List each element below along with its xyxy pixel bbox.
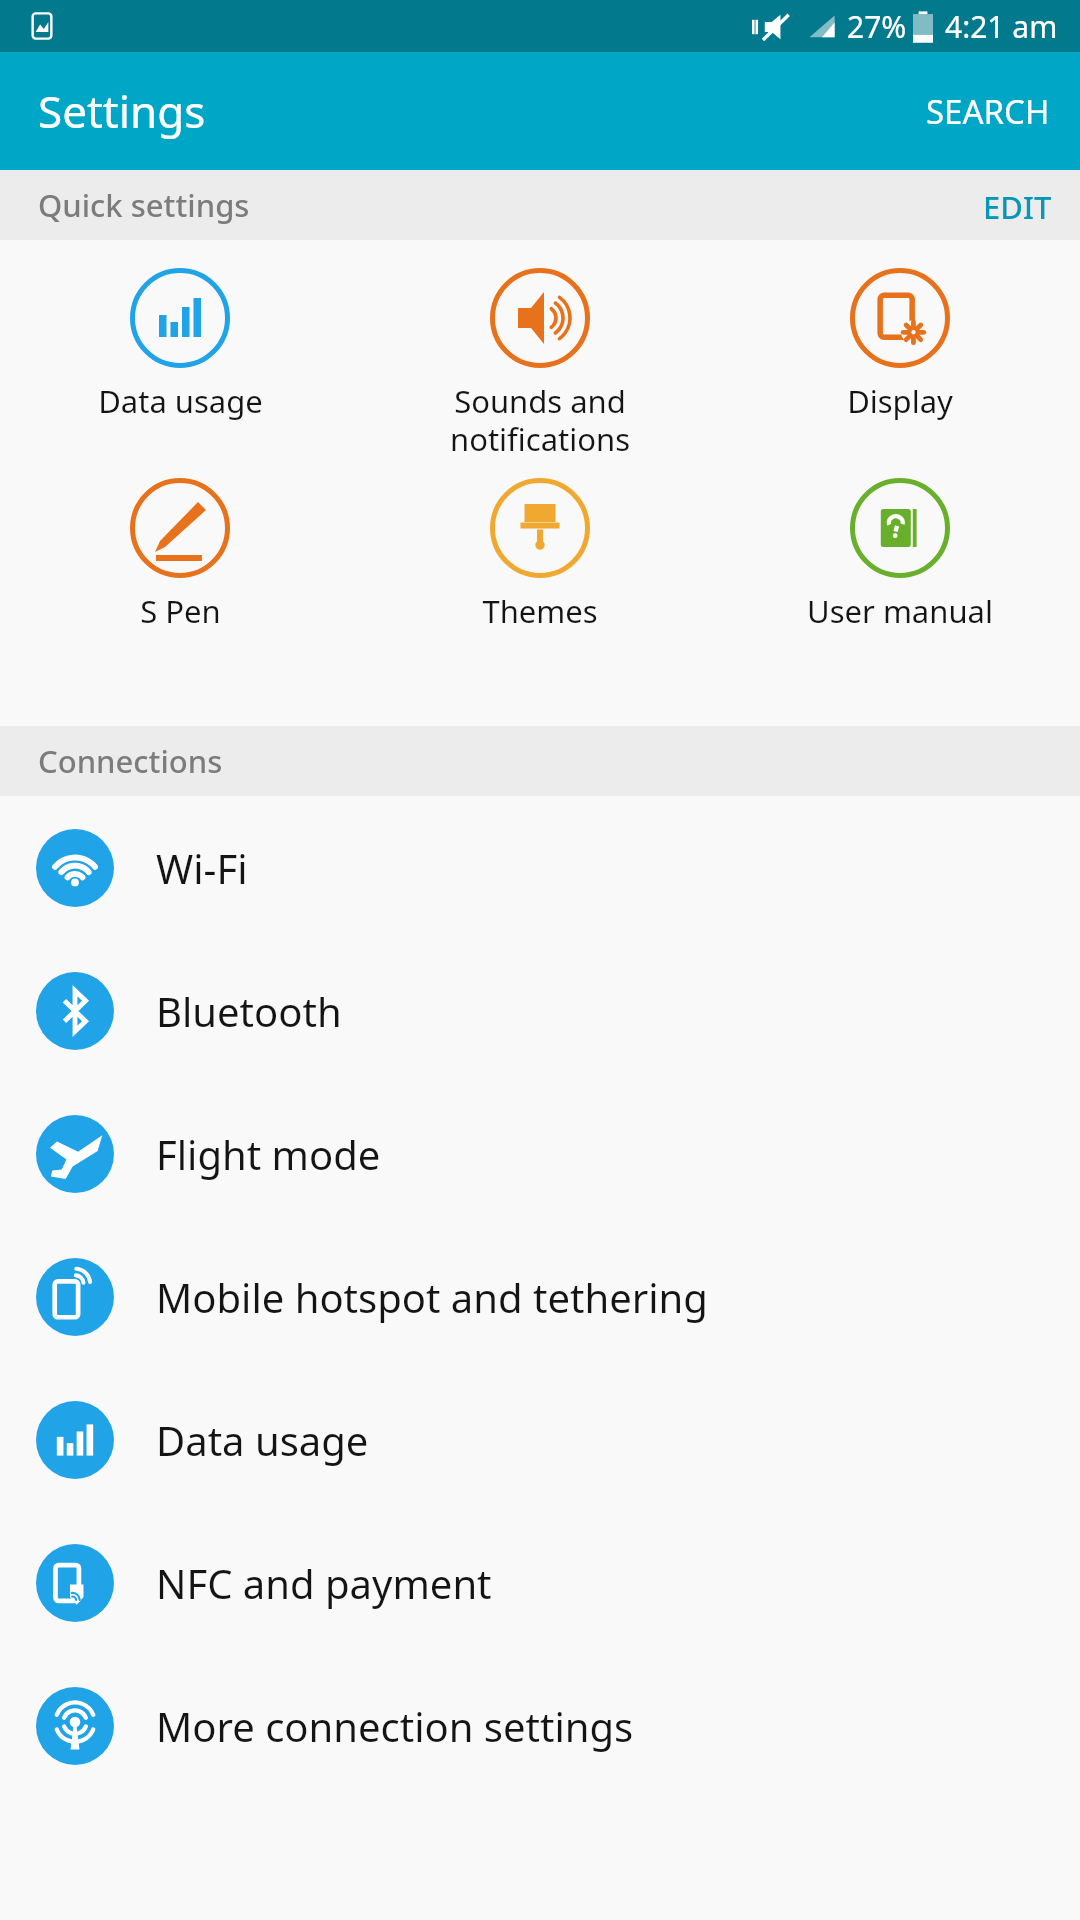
button[interactable]: Themes bbox=[360, 478, 720, 676]
staticText: Settings bbox=[38, 81, 206, 141]
staticText: Themes bbox=[482, 590, 598, 632]
button[interactable]: More connection settings bbox=[0, 1654, 1080, 1797]
staticText: Wi-Fi bbox=[156, 841, 248, 895]
staticText: NFC and payment bbox=[156, 1556, 492, 1610]
staticText: EDIT bbox=[983, 186, 1052, 224]
button[interactable]: EDIT bbox=[955, 170, 1080, 240]
button[interactable]: SEARCH bbox=[896, 63, 1080, 160]
button[interactable]: Flight mode bbox=[0, 1082, 1080, 1225]
button[interactable]: Mobile hotspot and tethering bbox=[0, 1225, 1080, 1368]
staticText: Display bbox=[847, 380, 953, 422]
button[interactable]: Bluetooth bbox=[0, 939, 1080, 1082]
staticText: Sounds and notifications bbox=[450, 380, 630, 460]
staticText: Data usage bbox=[98, 380, 263, 422]
staticText: S Pen bbox=[140, 590, 221, 632]
staticText: Data usage bbox=[156, 1413, 369, 1467]
other: Screenshot captured bbox=[24, 8, 60, 44]
button[interactable]: Sounds and notifications bbox=[360, 268, 720, 466]
staticText: Mobile hotspot and tethering bbox=[156, 1270, 708, 1324]
staticText: SEARCH bbox=[926, 89, 1050, 134]
staticText: User manual bbox=[807, 590, 993, 632]
button[interactable]: NFC and payment bbox=[0, 1511, 1080, 1654]
button[interactable]: Data usage bbox=[0, 1368, 1080, 1511]
staticText: More connection settings bbox=[156, 1699, 634, 1753]
button[interactable]: Wi-Fi bbox=[0, 796, 1080, 939]
staticText: 27% bbox=[847, 6, 907, 47]
staticText: Bluetooth bbox=[156, 984, 342, 1038]
staticText: Flight mode bbox=[156, 1127, 381, 1181]
staticText: Connections bbox=[38, 740, 223, 782]
button[interactable]: User manual bbox=[720, 478, 1080, 676]
button[interactable]: Data usage bbox=[0, 268, 360, 466]
staticText: 4:21 am bbox=[945, 6, 1058, 47]
staticText: Quick settings bbox=[38, 184, 250, 226]
button[interactable]: Display bbox=[720, 268, 1080, 466]
button[interactable]: S Pen bbox=[0, 478, 360, 676]
